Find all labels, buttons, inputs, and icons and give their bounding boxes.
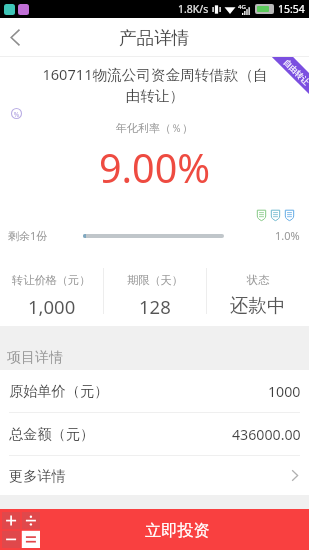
staticText: 状态 [247,273,270,287]
staticText: 128 [139,294,171,319]
staticText: 9.00% [0,141,309,195]
staticText: 剩余1份 [8,228,48,243]
button[interactable]: 总金额（元） [0,413,309,455]
staticText: 1.8K/s [178,2,209,16]
staticText: 436000.00 [232,425,301,444]
staticText: 立即投资 [145,520,210,540]
button[interactable]: 原始单价（元） [0,370,309,412]
staticText: 产品详情 [119,27,190,49]
button[interactable]: Calculator [2,512,40,548]
staticText: 转让价格（元） [12,273,91,287]
staticText: 自由转让 [282,57,309,87]
staticText: 还款中 [230,294,286,317]
staticText: 1,000 [28,294,76,319]
staticText: 4G [238,3,246,11]
staticText: 项目详情 [7,349,63,367]
staticText: 160711物流公司资金周转借款（自由转让） [39,64,271,105]
staticText: % [11,110,22,119]
button[interactable]: Back [0,18,29,57]
staticText: 原始单价（元） [9,382,109,400]
staticText: 总金额（元） [9,425,95,443]
staticText: 年化利率（％） [0,121,309,135]
staticText: 更多详情 [9,467,66,485]
button[interactable]: 更多详情 [0,456,309,495]
button[interactable]: 立即投资 [45,509,309,550]
staticText: 1000 [268,382,301,401]
staticText: 15:54 [278,2,305,16]
staticText: 1.0% [275,228,300,243]
staticText: 期限（天） [127,273,183,287]
